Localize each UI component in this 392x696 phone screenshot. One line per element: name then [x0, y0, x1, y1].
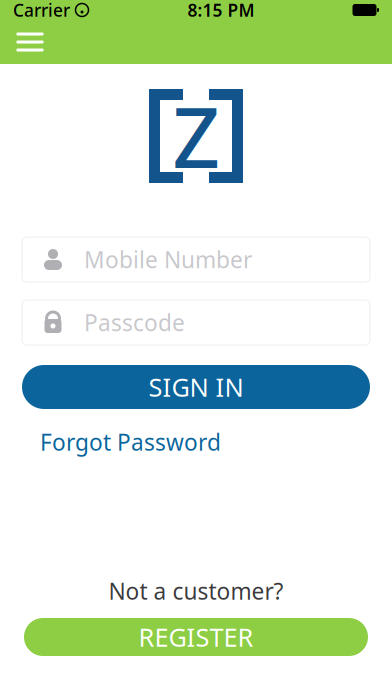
staticText: Z	[172, 81, 219, 191]
staticText: Passcode	[84, 307, 185, 337]
staticText: Not a customer?	[108, 576, 283, 606]
staticText: 8:15 PM	[187, 0, 254, 21]
staticText: REGISTER	[138, 620, 253, 654]
staticText: Forgot Password	[40, 427, 221, 457]
button[interactable]: Forgot Password	[40, 421, 221, 463]
staticText: SIGN IN	[148, 370, 243, 404]
staticText: Mobile Number	[84, 244, 252, 274]
button[interactable]: REGISTER	[24, 618, 368, 656]
button[interactable]: SIGN IN	[22, 365, 370, 409]
button[interactable]: Menu	[8, 20, 52, 64]
staticText: Carrier	[13, 0, 70, 21]
